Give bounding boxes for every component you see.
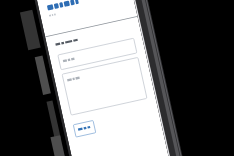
button[interactable]: Message text field [55,67,149,101]
button[interactable]: Submit [59,103,86,114]
button[interactable]: Subject text field [60,53,154,65]
